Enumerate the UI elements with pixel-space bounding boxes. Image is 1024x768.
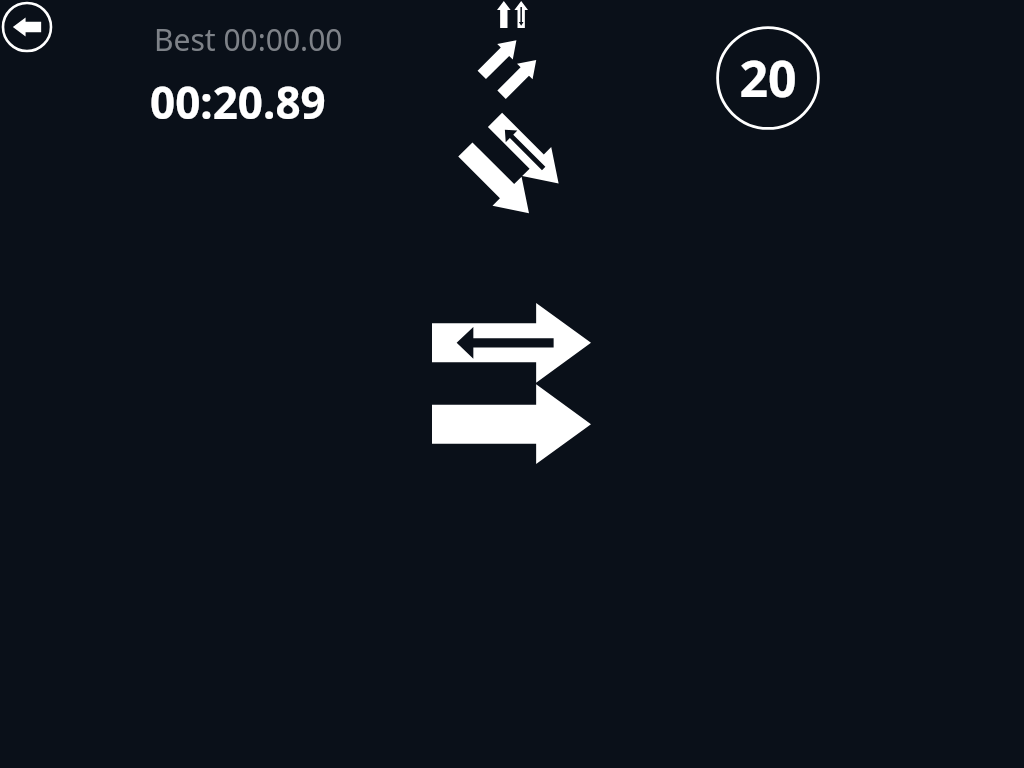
- button[interactable]: 20: [716, 26, 820, 130]
- staticText: 00:20.89: [150, 72, 326, 132]
- button[interactable]: Back: [1, 1, 53, 53]
- staticText: Best 00:00.00: [154, 19, 343, 60]
- staticText: 20: [739, 44, 797, 112]
